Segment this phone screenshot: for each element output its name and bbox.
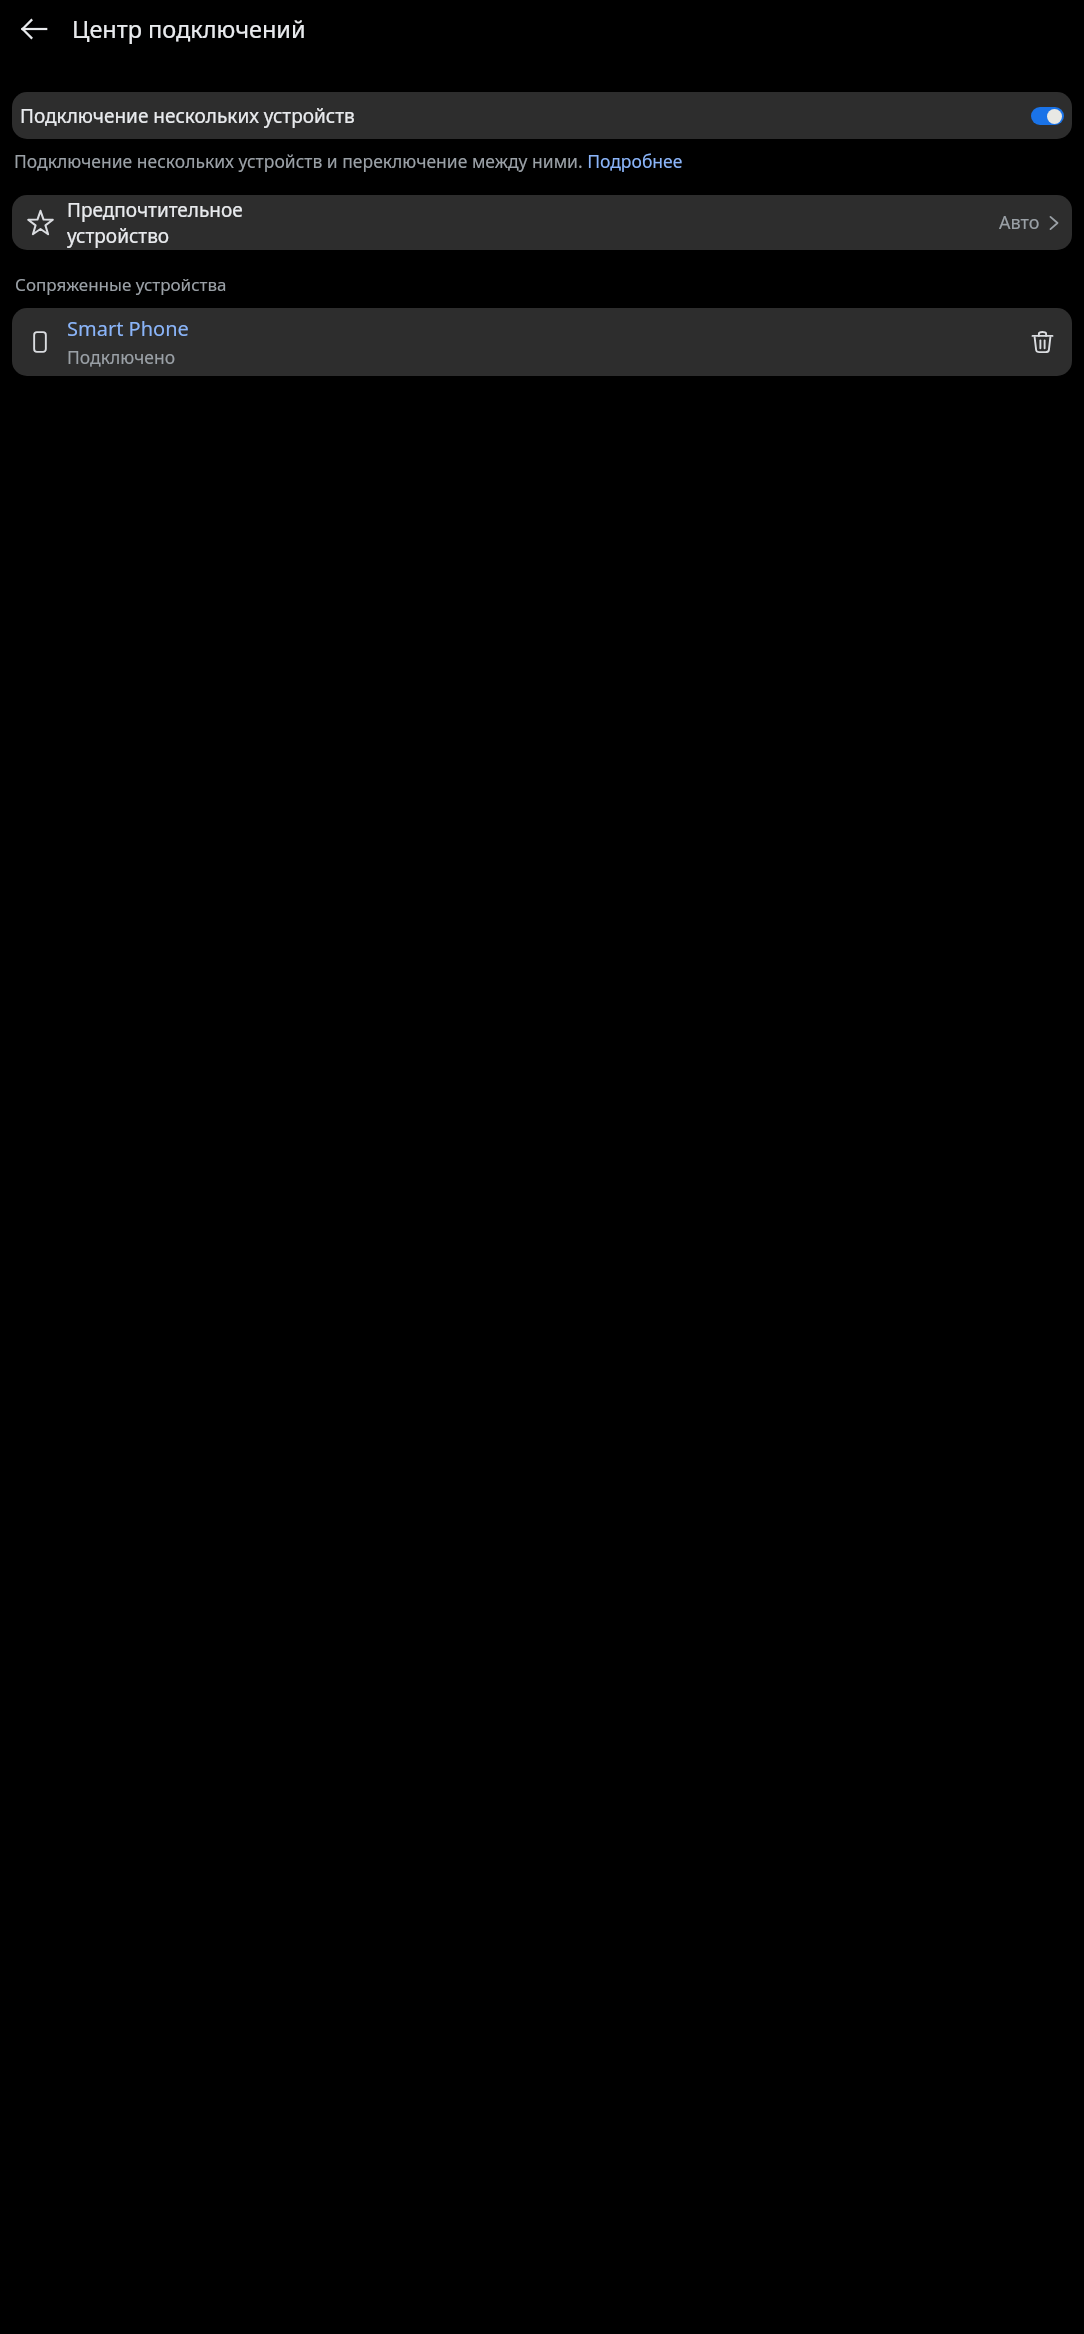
button[interactable]: Удалить устройство	[1022, 322, 1062, 362]
staticText: Предпочтительное устройство	[67, 197, 993, 248]
staticText: Подключение нескольких устройств	[20, 103, 1023, 129]
other: Переключатель включён	[1031, 107, 1064, 125]
button[interactable]: Подключение нескольких устройств	[12, 92, 1072, 139]
staticText: Smart Phone	[67, 315, 189, 342]
button[interactable]: Назад	[12, 7, 56, 51]
staticText: Авто	[999, 210, 1040, 235]
staticText: Сопряженные устройства	[15, 273, 227, 296]
staticText: Подключение нескольких устройств и перек…	[14, 149, 683, 173]
button[interactable]: Предпочтительное устройство	[12, 195, 1072, 250]
staticText: Подключено	[67, 345, 176, 369]
button[interactable]: Smart Phone	[12, 308, 1072, 376]
staticText: Центр подключений	[72, 13, 306, 45]
